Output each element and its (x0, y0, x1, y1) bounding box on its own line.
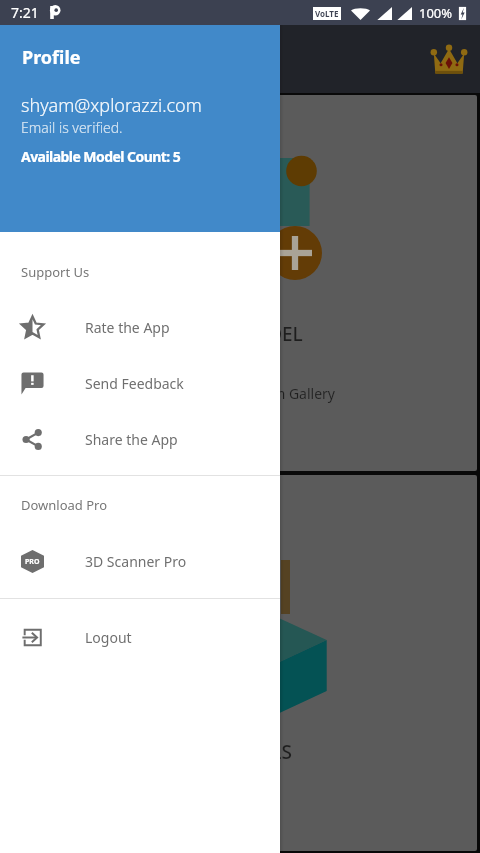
button[interactable]: Send Feedback (0, 355, 280, 411)
button[interactable]: Rate the App (0, 299, 280, 355)
staticText: Logout (85, 628, 132, 647)
staticText: Profile (22, 45, 81, 70)
button[interactable]: Logout (0, 609, 280, 665)
staticText: Rate the App (85, 318, 170, 337)
staticText: Available Model Count: 5 (21, 147, 181, 166)
staticText: Email is verified. (21, 118, 123, 137)
button[interactable]: Share the App (0, 411, 280, 467)
button[interactable]: Add new model (4, 95, 477, 471)
staticText: SCAN NEW MODEL (133, 321, 303, 347)
staticText: 7:21 (11, 3, 39, 22)
staticText: MY MODELS (181, 739, 292, 765)
staticText: VoLTE (315, 8, 339, 19)
staticText: Send Feedback (85, 374, 184, 393)
staticText: PRO (25, 557, 40, 567)
button[interactable]: MY MODELS (4, 475, 477, 851)
button[interactable]: Add new model (268, 226, 322, 280)
staticText: 3D Scanner Pro (85, 552, 187, 571)
staticText: Import from Gallery (204, 384, 335, 403)
staticText: Share the App (85, 430, 178, 449)
staticText: 100% (419, 4, 453, 22)
staticText: Download Pro (21, 496, 108, 514)
staticText: Support Us (21, 263, 90, 281)
button[interactable]: Go Premium (427, 39, 471, 83)
button[interactable]: PRO (0, 533, 280, 589)
staticText: shyam@xplorazzi.com (21, 93, 202, 118)
